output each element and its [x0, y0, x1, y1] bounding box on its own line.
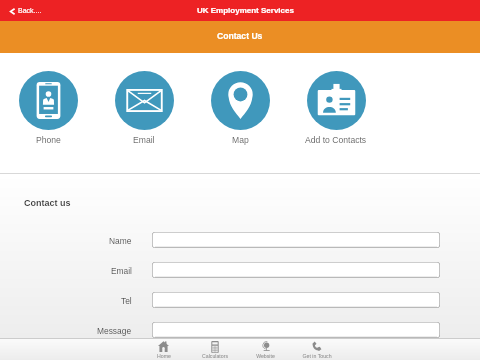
staticText: Website [256, 353, 275, 359]
staticText: Phone [36, 135, 61, 145]
staticText: Calculators [202, 353, 228, 359]
button[interactable] [152, 262, 440, 278]
staticText: UK Employment Services [197, 6, 294, 15]
staticText: Message [97, 326, 132, 335]
button[interactable]: Get in Touch [291, 338, 342, 360]
staticText: Name [109, 236, 132, 245]
staticText: Get in Touch [302, 353, 332, 359]
staticText: Email [111, 266, 132, 275]
button[interactable]: Home [138, 338, 189, 360]
staticText: Map [232, 135, 249, 145]
button[interactable]: Email [96, 71, 192, 145]
button[interactable]: Website [240, 338, 291, 360]
button[interactable]: Back.... [8, 5, 44, 17]
staticText: Add to Contacts [305, 135, 367, 145]
staticText: Email [133, 135, 155, 145]
staticText: Contact Us [217, 31, 263, 41]
button[interactable] [152, 322, 440, 338]
button[interactable]: Add to Contacts [288, 71, 384, 145]
button[interactable]: Phone [0, 71, 96, 145]
button[interactable] [152, 232, 440, 248]
staticText: Back.... [18, 7, 42, 15]
staticText: Tel [121, 296, 132, 305]
button[interactable]: Map [192, 71, 288, 145]
button[interactable]: Calculators [189, 338, 240, 360]
staticText: Contact us [24, 198, 71, 208]
staticText: Home [157, 353, 171, 359]
button[interactable] [152, 292, 440, 308]
